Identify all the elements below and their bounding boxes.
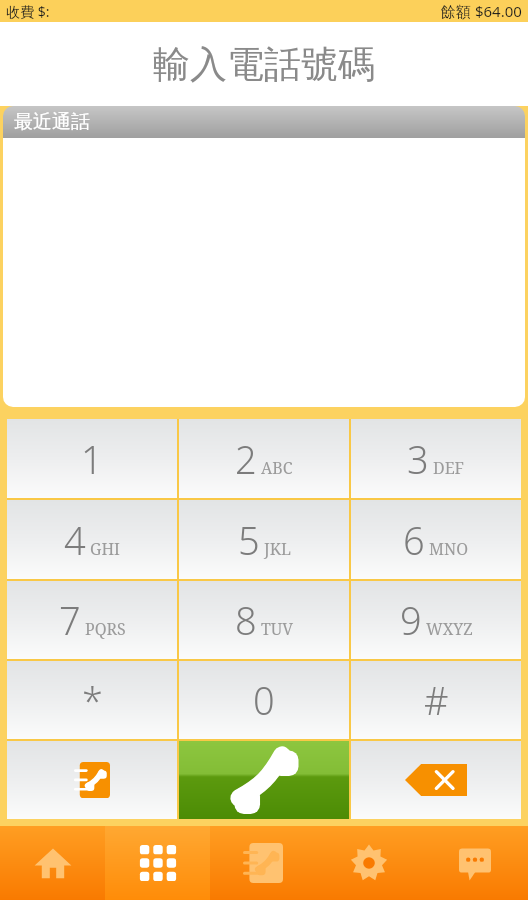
button[interactable]: 9 (351, 581, 521, 659)
button[interactable]: Home (0, 826, 105, 900)
button[interactable]: Backspace (351, 741, 521, 819)
button[interactable]: * (7, 661, 177, 739)
button[interactable]: Contacts (210, 826, 316, 900)
staticText: 1 (81, 433, 103, 485)
staticText: 5 (238, 514, 260, 566)
button[interactable]: 3 (351, 419, 521, 498)
button[interactable]: Messages (422, 826, 528, 900)
button[interactable]: 1 (7, 419, 177, 498)
staticText: 收費 $: (6, 2, 50, 21)
staticText: WXYZ (426, 618, 473, 640)
staticText: MNO (429, 538, 469, 560)
button[interactable]: 5 (179, 500, 349, 579)
button[interactable]: 7 (7, 581, 177, 659)
staticText: 8 (235, 594, 257, 646)
staticText: ABC (261, 457, 293, 479)
staticText: 0 (253, 674, 275, 726)
button[interactable]: 6 (351, 500, 521, 579)
staticText: 最近通話 (14, 110, 90, 134)
staticText: 9 (400, 594, 422, 646)
staticText: TUV (261, 618, 294, 640)
button[interactable]: 0 (179, 661, 349, 739)
button[interactable]: # (351, 661, 521, 739)
staticText: DEF (433, 457, 465, 479)
staticText: 7 (59, 594, 81, 646)
staticText: # (424, 674, 449, 726)
staticText: * (82, 674, 103, 726)
staticText: 輸入電話號碼 (153, 41, 375, 88)
button[interactable]: Contacts (7, 741, 177, 819)
staticText: 4 (64, 514, 86, 566)
staticText: 2 (235, 433, 257, 485)
staticText: 餘額 $64.00 (441, 1, 522, 21)
staticText: PQRS (85, 618, 126, 640)
button[interactable]: 8 (179, 581, 349, 659)
staticText: JKL (264, 538, 291, 560)
staticText: GHI (90, 538, 120, 560)
button[interactable]: Dialpad (105, 826, 210, 900)
button[interactable]: Settings (316, 826, 422, 900)
button[interactable]: Call (179, 741, 349, 819)
button[interactable]: 4 (7, 500, 177, 579)
button[interactable]: 2 (179, 419, 349, 498)
staticText: 6 (403, 514, 425, 566)
staticText: 3 (407, 433, 429, 485)
